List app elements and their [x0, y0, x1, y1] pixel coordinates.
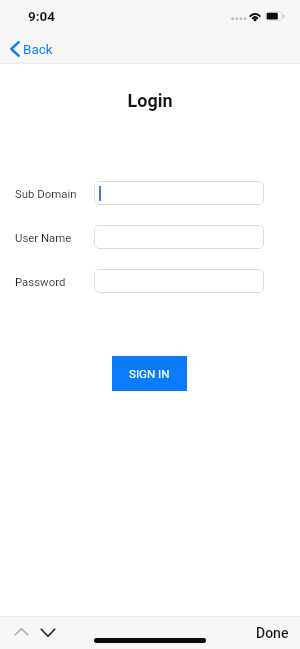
staticText: Back [23, 41, 53, 57]
staticText: User Name [15, 231, 94, 244]
staticText: Sub Domain [15, 187, 94, 200]
staticText: Login [0, 90, 300, 111]
button[interactable]: SIGN IN [112, 356, 187, 391]
staticText: SIGN IN [129, 367, 170, 381]
staticText: 9:04 [28, 8, 56, 24]
button[interactable]: Next field [35, 623, 61, 641]
button[interactable] [94, 181, 264, 205]
staticText: Password [15, 275, 94, 288]
button[interactable] [94, 269, 264, 293]
button[interactable] [94, 225, 264, 249]
button[interactable]: Done [253, 623, 292, 643]
button[interactable]: Previous field [8, 623, 34, 641]
staticText: Done [256, 625, 289, 641]
button[interactable]: Back [6, 37, 57, 61]
